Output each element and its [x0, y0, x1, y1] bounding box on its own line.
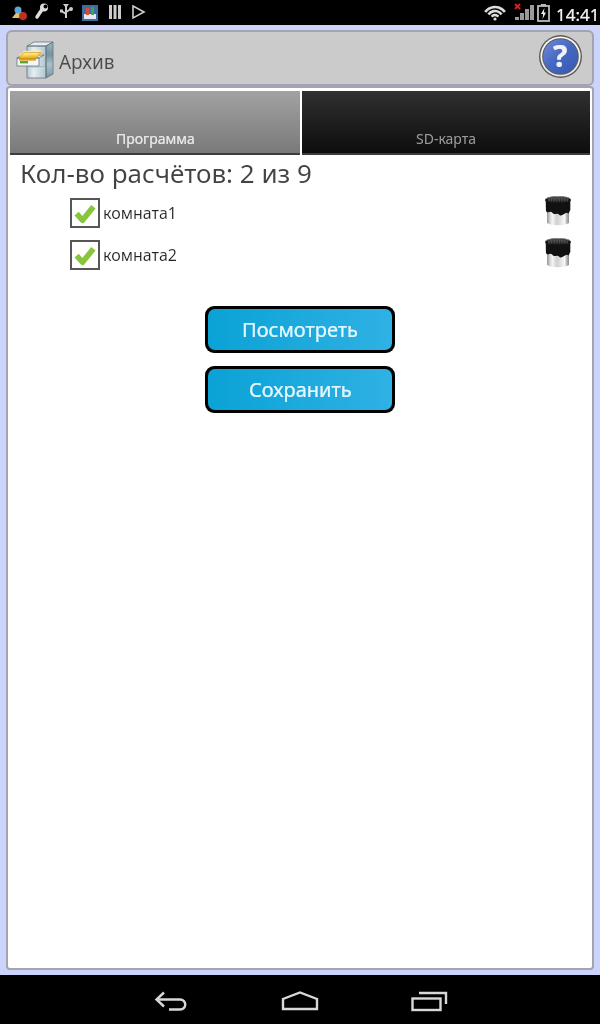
button[interactable]: Delete	[544, 238, 572, 268]
staticText: Сохранить	[249, 376, 352, 403]
staticText: 14:41	[556, 3, 600, 26]
button[interactable]: Сохранить	[208, 369, 392, 410]
button[interactable]: Программа	[10, 91, 300, 155]
button[interactable]: Help	[539, 35, 582, 78]
staticText: Программа	[116, 129, 195, 148]
staticText: ?	[553, 35, 568, 76]
staticText: комната1	[103, 202, 178, 224]
button[interactable]: Back	[149, 990, 197, 1022]
button[interactable]: Посмотреть	[208, 309, 392, 350]
button[interactable]: Home	[276, 991, 324, 1023]
button[interactable]: Delete	[544, 196, 572, 226]
button[interactable]: SD-карта	[302, 91, 590, 155]
staticText: комната2	[103, 244, 178, 266]
button[interactable]: комната1	[8, 199, 592, 229]
staticText: Кол-во расчётов: 2 из 9	[20, 155, 312, 190]
button[interactable]: Recents	[404, 984, 452, 1016]
button[interactable]: комната2	[8, 241, 592, 271]
staticText: SD-карта	[416, 129, 477, 148]
staticText: Посмотреть	[242, 316, 358, 343]
staticText: Архив	[59, 49, 115, 75]
